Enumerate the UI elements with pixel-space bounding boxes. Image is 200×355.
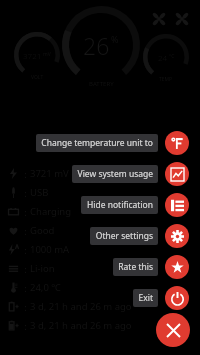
staticText: 3 d, 21 h and 26 m ago	[30, 319, 132, 332]
staticText: USB	[30, 186, 49, 199]
staticText: Li-ion	[30, 262, 55, 275]
button[interactable]: Rate this	[113, 258, 158, 276]
button[interactable]: Rate this	[165, 255, 189, 279]
button[interactable]: View system usage	[165, 162, 189, 186]
button[interactable]: Exit	[165, 286, 189, 310]
staticText: Charging	[30, 205, 72, 218]
staticText: View system usage	[77, 168, 153, 180]
button[interactable]: Change temperature unit to	[165, 131, 189, 155]
staticText: 24,0 ℃	[30, 281, 61, 294]
staticText: Hide notification	[86, 199, 153, 211]
button[interactable]: Other settings	[90, 227, 158, 245]
staticText: %	[111, 33, 119, 45]
staticText: Exit	[138, 292, 153, 304]
staticText: Other settings	[95, 230, 153, 242]
button[interactable]: Close menu	[156, 313, 190, 347]
button[interactable]: Change temperature unit to	[36, 134, 158, 152]
staticText: Good	[30, 224, 55, 237]
staticText: BATTERY	[89, 80, 114, 88]
button[interactable]: Exit	[133, 289, 158, 307]
staticText: 3721 mV	[30, 167, 69, 180]
staticText: 3 d, 21 h and 26 m ago	[30, 300, 132, 313]
button[interactable]: Hide notification	[81, 196, 158, 214]
staticText: Rate this	[118, 261, 153, 273]
button[interactable]: View system usage	[72, 165, 158, 183]
staticText: Change temperature unit to	[41, 137, 153, 149]
staticText: VOLT	[31, 74, 44, 81]
staticText: 26	[83, 30, 110, 61]
staticText: 1000 mA	[30, 243, 70, 256]
staticText: TEMP	[159, 76, 173, 83]
button[interactable]: Other settings	[165, 224, 189, 248]
button[interactable]: Hide notification	[165, 193, 189, 217]
